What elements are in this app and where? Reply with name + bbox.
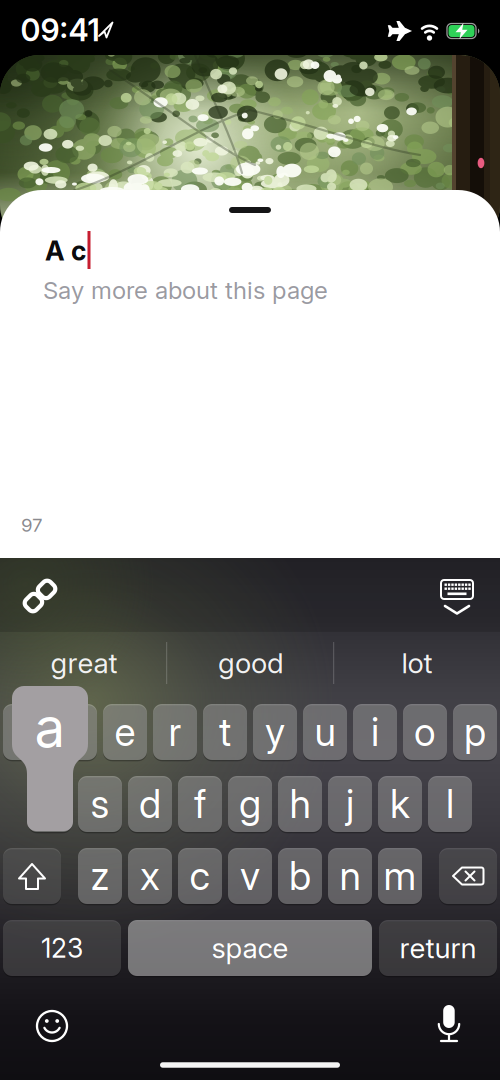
button[interactable]: d — [128, 776, 172, 832]
staticText: 123 — [41, 932, 83, 964]
staticText: m — [383, 853, 416, 899]
staticText: great — [50, 646, 117, 679]
button[interactable]: v — [228, 848, 272, 904]
button[interactable]: Dismiss keyboard — [435, 577, 479, 617]
button[interactable]: y — [253, 704, 297, 760]
button[interactable]: w — [53, 704, 97, 760]
staticText: l — [446, 781, 454, 827]
staticText: t — [219, 709, 231, 755]
button[interactable]: lot — [337, 638, 497, 688]
staticText: d — [139, 781, 161, 827]
button[interactable]: b — [278, 848, 322, 904]
button[interactable]: h — [278, 776, 322, 832]
button[interactable]: f — [178, 776, 222, 832]
button[interactable]: j — [328, 776, 372, 832]
button[interactable]: n — [328, 848, 372, 904]
staticText: good — [218, 646, 284, 679]
button[interactable]: return — [379, 920, 497, 976]
staticText: c — [189, 853, 210, 899]
staticText: s — [90, 781, 109, 827]
staticText: return — [399, 931, 476, 964]
button[interactable]: Emoji — [30, 1004, 74, 1048]
button[interactable]: Insert link — [18, 574, 62, 618]
button[interactable]: a — [28, 776, 72, 832]
button[interactable]: l — [428, 776, 472, 832]
staticText: e — [114, 709, 135, 755]
button[interactable]: 123 — [3, 920, 121, 976]
button[interactable]: g — [228, 776, 272, 832]
button[interactable]: e — [103, 704, 147, 760]
button[interactable]: Dictation — [427, 1002, 471, 1046]
button[interactable]: c — [178, 848, 222, 904]
button[interactable]: z — [78, 848, 122, 904]
staticText: r — [168, 709, 181, 755]
staticText: h — [289, 781, 310, 827]
button[interactable]: o — [403, 704, 447, 760]
button[interactable]: s — [78, 776, 122, 832]
staticText: x — [140, 853, 160, 899]
button[interactable]: Delete — [439, 848, 497, 904]
staticText: u — [314, 709, 335, 755]
staticText: g — [239, 781, 261, 827]
staticText: j — [346, 781, 354, 827]
staticText: 09:41 — [20, 12, 99, 48]
button[interactable]: space — [128, 920, 372, 976]
staticText: k — [390, 781, 410, 827]
button[interactable]: p — [453, 704, 497, 760]
button[interactable]: r — [153, 704, 197, 760]
staticText: a — [34, 695, 65, 759]
staticText: f — [194, 781, 206, 827]
staticText: y — [265, 709, 285, 755]
button[interactable]: Shift — [3, 848, 61, 904]
staticText: z — [90, 853, 109, 899]
button[interactable]: k — [378, 776, 422, 832]
staticText: n — [339, 853, 360, 899]
staticText: 97 — [21, 514, 43, 536]
staticText: Say more about this page — [43, 276, 328, 304]
button[interactable]: u — [303, 704, 347, 760]
staticText: p — [464, 709, 486, 755]
staticText: o — [414, 709, 436, 755]
staticText: b — [289, 853, 311, 899]
staticText: A c — [45, 235, 86, 266]
staticText: space — [211, 931, 288, 964]
staticText: i — [371, 709, 379, 755]
button[interactable]: q — [3, 704, 47, 760]
staticText: lot — [401, 646, 432, 679]
button[interactable]: great — [4, 638, 164, 688]
button[interactable]: i — [353, 704, 397, 760]
button[interactable]: m — [378, 848, 422, 904]
button[interactable]: good — [171, 638, 331, 688]
button[interactable]: x — [128, 848, 172, 904]
staticText: v — [240, 853, 260, 899]
button[interactable]: t — [203, 704, 247, 760]
